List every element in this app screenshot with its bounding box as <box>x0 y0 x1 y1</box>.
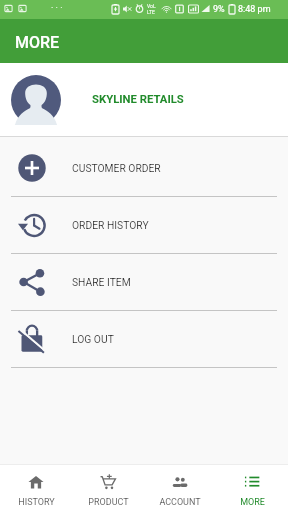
button[interactable]: SKYLINE RETAILS <box>0 63 288 136</box>
button[interactable]: MORE <box>216 465 288 512</box>
button[interactable]: PRODUCT <box>72 465 144 512</box>
button[interactable]: ORDER HISTORY <box>0 197 288 253</box>
staticText: VoL <box>147 3 156 9</box>
staticText: 8:48 pm <box>238 4 271 15</box>
staticText: 9% <box>213 4 225 15</box>
staticText: ACCOUNT <box>159 497 201 508</box>
staticText: SKYLINE RETAILS <box>92 93 184 106</box>
staticText: CUSTOMER ORDER <box>72 162 161 174</box>
button[interactable]: LOG OUT <box>0 311 288 367</box>
staticText: ORDER HISTORY <box>72 219 149 231</box>
staticText: LTE <box>147 9 155 15</box>
staticText: MORE <box>15 33 60 52</box>
staticText: HISTORY <box>18 497 55 508</box>
button[interactable]: HISTORY <box>0 465 72 512</box>
staticText: LOG OUT <box>72 333 114 345</box>
button[interactable]: ACCOUNT <box>144 465 216 512</box>
button[interactable]: CUSTOMER ORDER <box>0 140 288 196</box>
button[interactable]: SHARE ITEM <box>0 254 288 310</box>
staticText: · · · <box>51 3 63 14</box>
staticText: SHARE ITEM <box>72 276 131 288</box>
staticText: PRODUCT <box>88 497 129 508</box>
staticText: MORE <box>240 497 265 508</box>
